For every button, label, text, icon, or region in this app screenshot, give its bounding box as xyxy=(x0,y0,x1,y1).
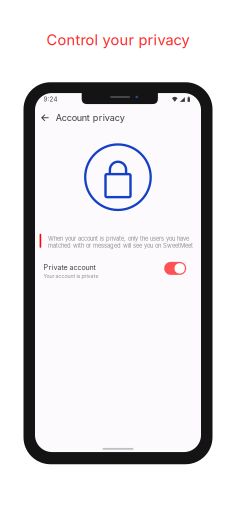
staticText: When your account is private, only the u… xyxy=(48,235,193,249)
staticText: 9:24 xyxy=(44,95,58,103)
staticText: Account privacy xyxy=(56,112,125,123)
staticText: Control your privacy xyxy=(46,31,189,49)
button[interactable]: Back xyxy=(35,110,56,125)
staticText: Your account is private xyxy=(43,273,98,279)
button[interactable]: Private account xyxy=(35,261,201,281)
staticText: Private account xyxy=(43,263,95,272)
